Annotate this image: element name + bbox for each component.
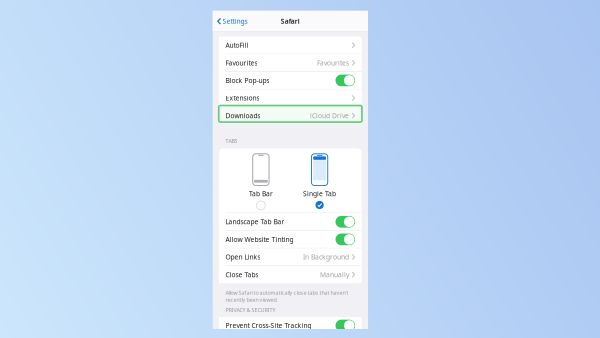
button[interactable]: AutoFill: [219, 37, 362, 54]
button[interactable]: Tab Bar: [238, 150, 284, 212]
button[interactable]: Open Links: [219, 248, 362, 265]
staticText: Favourites: [317, 58, 349, 67]
button[interactable]: Close Tabs: [219, 266, 362, 283]
staticText: Settings: [223, 17, 248, 26]
staticText: Allow Safari to automatically close tabs…: [225, 289, 348, 296]
staticText: recently been viewed.: [225, 296, 277, 303]
staticText: Prevent Cross-Site Tracking: [225, 321, 311, 330]
button[interactable]: Single Tab: [297, 150, 343, 212]
button[interactable]: Allow Website Tinting: [219, 231, 362, 248]
staticText: Close Tabs: [225, 270, 258, 279]
staticText: Single Tab: [303, 189, 336, 198]
staticText: TABS: [225, 137, 237, 145]
staticText: Tab Bar: [249, 189, 273, 198]
staticText: Open Links: [225, 252, 260, 261]
staticText: Downloads: [225, 111, 260, 120]
button[interactable]: Settings: [213, 13, 248, 30]
staticText: In Background: [303, 252, 349, 261]
staticText: Allow Website Tinting: [225, 235, 293, 244]
staticText: Favourites: [225, 58, 257, 67]
button[interactable]: Favourites: [219, 54, 362, 71]
staticText: Landscape Tab Bar: [225, 217, 284, 226]
staticText: PRIVACY & SECURITY: [225, 306, 275, 314]
button[interactable]: Downloads: [219, 107, 362, 124]
button[interactable]: Prevent Cross-Site Tracking: [219, 317, 362, 334]
button[interactable]: Block Pop-ups: [219, 72, 362, 89]
button[interactable]: Landscape Tab Bar: [219, 213, 362, 230]
button[interactable]: Extensions: [219, 89, 362, 107]
staticText: Manually: [320, 270, 349, 279]
staticText: AutoFill: [225, 41, 248, 50]
staticText: iCloud Drive: [310, 111, 349, 120]
staticText: Safari: [281, 17, 300, 26]
staticText: Extensions: [225, 94, 259, 102]
staticText: Block Pop-ups: [225, 76, 269, 85]
